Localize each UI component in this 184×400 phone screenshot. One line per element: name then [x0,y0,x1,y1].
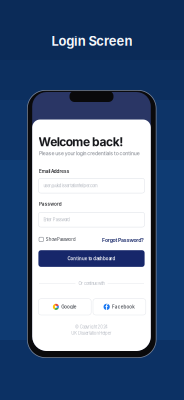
button[interactable]: Google [38,299,91,315]
staticText: UK Dissertation Helper [71,331,112,336]
staticText: Or continue with [78,281,105,286]
button[interactable]: Show Password [39,237,76,242]
staticText: Email Address [39,169,70,174]
staticText: Continue to dashboard [67,256,115,261]
staticText: Welcome back! [39,135,123,149]
button[interactable]: Continue to dashboard [38,250,145,267]
staticText: Forgot Password? [102,237,144,243]
staticText: © Copyright 2024 [75,324,108,329]
staticText: Please use your login credentials to con… [39,150,140,157]
staticText: Login Screen [52,33,132,49]
staticText: f [105,303,108,312]
staticText: Google [61,304,77,310]
staticText: user@ukdissertationhelper.com [43,183,98,188]
staticText: Facebook [112,304,135,310]
staticText: Show Password [46,237,76,242]
button[interactable]: f [93,299,146,315]
button[interactable]: Forgot Password? [39,237,144,243]
staticText: Enter Password [43,217,70,222]
staticText: Password [39,201,62,207]
